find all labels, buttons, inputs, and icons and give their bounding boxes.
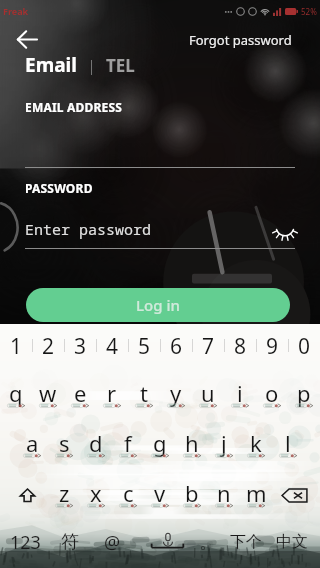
staticText: 6 (170, 332, 183, 361)
staticText: 52% (301, 6, 317, 17)
button[interactable]: m (240, 470, 272, 520)
staticText: n (217, 478, 231, 508)
staticText: h (185, 428, 199, 458)
button[interactable]: TEL (106, 54, 135, 77)
staticText: 9 (266, 332, 279, 361)
button[interactable]: i (224, 370, 256, 420)
staticText: z (59, 478, 70, 508)
button[interactable]: 6 (160, 324, 192, 368)
button[interactable]: Enter password (25, 219, 152, 239)
button[interactable]: @ (92, 518, 132, 566)
button[interactable]: 符 (50, 518, 90, 566)
staticText: q (9, 378, 23, 408)
staticText: @ (104, 530, 121, 555)
staticText: y (170, 378, 182, 408)
staticText: r (107, 378, 117, 408)
button[interactable]: 3 (64, 324, 96, 368)
staticText: e (74, 378, 87, 408)
staticText: s (59, 428, 70, 458)
staticText: u (201, 378, 215, 408)
staticText: x (90, 478, 102, 508)
button[interactable]: Forgot password (189, 31, 292, 49)
button[interactable]: o (256, 370, 288, 420)
button[interactable]: n (208, 470, 240, 520)
staticText: l (285, 428, 291, 458)
button[interactable]: v (144, 470, 176, 520)
staticText: i (237, 378, 243, 408)
button[interactable]: 8 (224, 324, 256, 368)
button[interactable]: s (48, 420, 80, 470)
button[interactable]: 7 (192, 324, 224, 368)
button[interactable]: 2 (32, 324, 64, 368)
button[interactable]: w (32, 370, 64, 420)
button[interactable]: Log in (26, 288, 290, 322)
button[interactable]: h (176, 420, 208, 470)
staticText: Log in (136, 295, 180, 315)
staticText: Freak (3, 5, 29, 17)
button[interactable]: q (0, 370, 32, 420)
staticText: t (140, 378, 148, 408)
staticText: f (124, 428, 132, 458)
button[interactable]: r (96, 370, 128, 420)
button[interactable]: p (288, 370, 320, 420)
staticText: 符 (61, 531, 79, 554)
staticText: EMAIL ADDRESS (25, 99, 123, 115)
button[interactable]: a (16, 420, 48, 470)
staticText: g (153, 428, 167, 458)
button[interactable]: Shift (6, 470, 48, 520)
staticText: 。 (199, 531, 217, 554)
button[interactable]: Show password (272, 217, 298, 243)
button[interactable]: 0 (288, 324, 320, 368)
staticText: o (265, 378, 279, 408)
button[interactable]: 1 (0, 324, 32, 368)
staticText: 0 (298, 332, 311, 361)
button[interactable]: 9 (256, 324, 288, 368)
staticText: w (39, 378, 57, 408)
button[interactable]: 4 (96, 324, 128, 368)
button[interactable]: x (80, 470, 112, 520)
staticText: PASSWORD (25, 180, 93, 196)
staticText: 中文 (276, 532, 308, 552)
button[interactable]: j (208, 420, 240, 470)
staticText: 1 (10, 332, 23, 361)
staticText: v (154, 478, 166, 508)
button[interactable]: c (112, 470, 144, 520)
button[interactable]: u (192, 370, 224, 420)
staticText: j (221, 428, 227, 458)
button[interactable]: 下个 (222, 518, 270, 566)
staticText: 7 (202, 332, 215, 361)
button[interactable]: 5 (128, 324, 160, 368)
button[interactable]: 中文 (268, 518, 316, 566)
button[interactable]: Space (134, 520, 200, 568)
button[interactable]: Back (9, 21, 45, 57)
button[interactable]: t (128, 370, 160, 420)
button[interactable]: 123 (4, 518, 46, 566)
staticText: d (89, 428, 103, 458)
button[interactable]: z (48, 470, 80, 520)
staticText: 4 (106, 332, 119, 361)
staticText: a (26, 428, 39, 458)
staticText: c (123, 478, 134, 508)
button[interactable]: g (144, 420, 176, 470)
staticText: 5 (138, 332, 151, 361)
staticText: m (246, 478, 267, 508)
button[interactable]: Email (25, 52, 77, 78)
button[interactable]: k (240, 420, 272, 470)
staticText: 8 (234, 332, 247, 361)
staticText: k (250, 428, 262, 458)
button[interactable]: Backspace (272, 470, 316, 520)
button[interactable]: l (272, 420, 304, 470)
staticText: 3 (74, 332, 87, 361)
button[interactable]: b (176, 470, 208, 520)
button[interactable]: y (160, 370, 192, 420)
button[interactable]: f (112, 420, 144, 470)
staticText: 下个 (230, 532, 262, 552)
button[interactable]: e (64, 370, 96, 420)
button[interactable]: d (80, 420, 112, 470)
staticText: b (185, 478, 199, 508)
staticText: p (297, 378, 311, 408)
staticText: 123 (10, 530, 41, 555)
button[interactable]: 。 (190, 518, 226, 566)
staticText: 2 (42, 332, 55, 361)
